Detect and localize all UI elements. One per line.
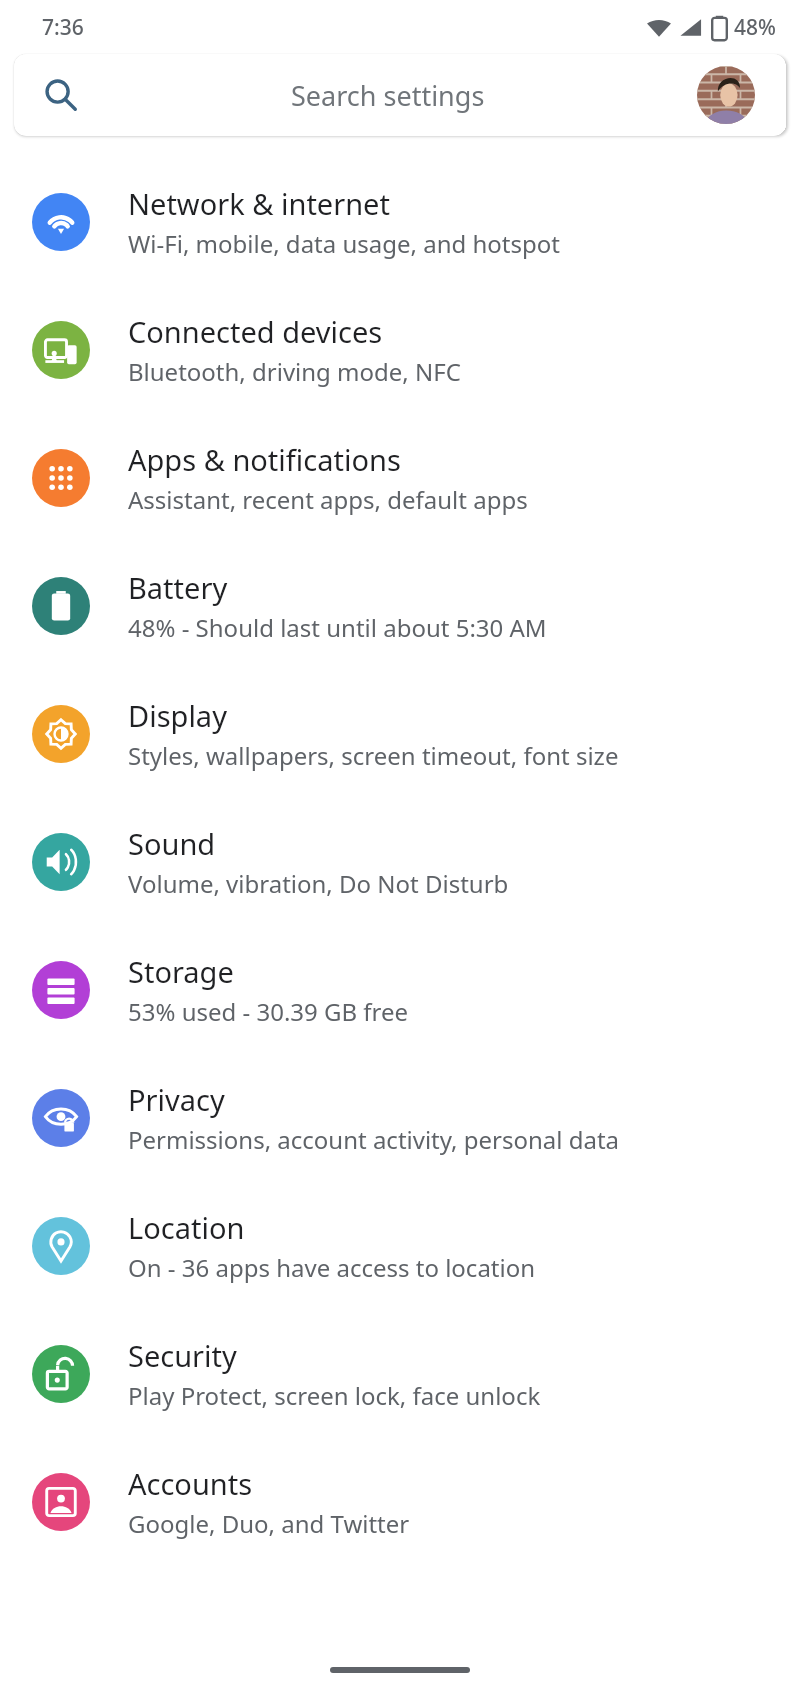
button[interactable]: Account xyxy=(697,66,755,124)
staticText: Connected devices xyxy=(128,312,383,351)
staticText: Storage xyxy=(128,952,234,991)
button[interactable]: Security xyxy=(0,1310,800,1438)
staticText: Display xyxy=(128,696,227,735)
staticText: Assistant, recent apps, default apps xyxy=(128,483,528,516)
staticText: Privacy xyxy=(128,1080,225,1119)
staticText: Play Protect, screen lock, face unlock xyxy=(128,1379,541,1412)
staticText: 48% - Should last until about 5:30 AM xyxy=(128,611,547,644)
staticText: 53% used - 30.39 GB free xyxy=(128,995,409,1028)
staticText: Apps & notifications xyxy=(128,440,401,479)
staticText: Location xyxy=(128,1208,245,1247)
button[interactable]: Apps & notifications xyxy=(0,414,800,542)
button[interactable]: Storage xyxy=(0,926,800,1054)
staticText: Bluetooth, driving mode, NFC xyxy=(128,355,461,388)
staticText: 7:36 xyxy=(42,13,84,42)
staticText: Volume, vibration, Do Not Disturb xyxy=(128,867,509,900)
button[interactable]: Battery xyxy=(0,542,800,670)
staticText: Search settings xyxy=(291,77,485,114)
button[interactable]: Accounts xyxy=(0,1438,800,1566)
staticText: Network & internet xyxy=(128,184,390,223)
button[interactable]: Connected devices xyxy=(0,286,800,414)
staticText: Wi-Fi, mobile, data usage, and hotspot xyxy=(128,227,560,260)
staticText: Security xyxy=(128,1336,237,1375)
button[interactable]: Network & internet xyxy=(0,158,800,286)
staticText: Battery xyxy=(128,568,228,607)
staticText: On - 36 apps have access to location xyxy=(128,1251,536,1284)
staticText: 48% xyxy=(734,13,776,42)
staticText: Sound xyxy=(128,824,216,863)
button[interactable]: Privacy xyxy=(0,1054,800,1182)
other: Search xyxy=(44,78,78,112)
staticText: Google, Duo, and Twitter xyxy=(128,1507,410,1540)
staticText: Accounts xyxy=(128,1464,253,1503)
staticText: Styles, wallpapers, screen timeout, font… xyxy=(128,739,619,772)
button[interactable]: Search xyxy=(14,54,786,136)
button[interactable]: Display xyxy=(0,670,800,798)
button[interactable]: Location xyxy=(0,1182,800,1310)
button[interactable]: Sound xyxy=(0,798,800,926)
staticText: Permissions, account activity, personal … xyxy=(128,1123,620,1156)
